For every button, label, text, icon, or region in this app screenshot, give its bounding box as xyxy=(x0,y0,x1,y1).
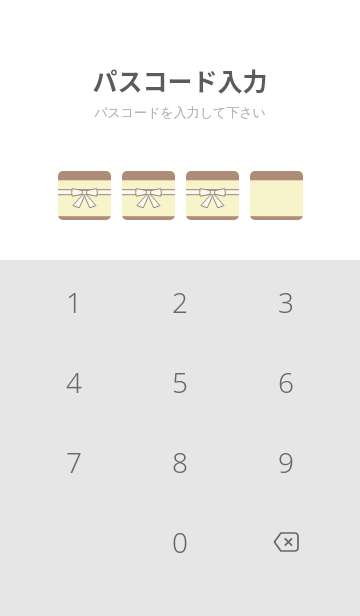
button[interactable]: 0 xyxy=(127,502,233,582)
staticText: 2 xyxy=(172,283,188,321)
staticText: 0 xyxy=(172,523,188,561)
staticText: 4 xyxy=(66,363,82,401)
staticText: 1 xyxy=(66,283,82,321)
staticText: 8 xyxy=(172,443,188,481)
button[interactable]: Delete xyxy=(233,502,339,582)
button[interactable]: 6 xyxy=(233,342,339,422)
button[interactable]: 4 xyxy=(21,342,127,422)
button[interactable]: 2 xyxy=(127,262,233,342)
button[interactable]: 9 xyxy=(233,422,339,502)
staticText: 7 xyxy=(66,443,82,481)
staticText: パスコード入力 xyxy=(92,62,268,98)
staticText: 6 xyxy=(278,363,294,401)
button[interactable]: 5 xyxy=(127,342,233,422)
staticText: 9 xyxy=(278,443,294,481)
staticText: パスコードを入力して下さい xyxy=(94,104,266,120)
button[interactable]: 1 xyxy=(21,262,127,342)
button[interactable]: 8 xyxy=(127,422,233,502)
staticText: 5 xyxy=(172,363,188,401)
button[interactable]: 7 xyxy=(21,422,127,502)
staticText: 3 xyxy=(278,283,294,321)
button[interactable]: 3 xyxy=(233,262,339,342)
